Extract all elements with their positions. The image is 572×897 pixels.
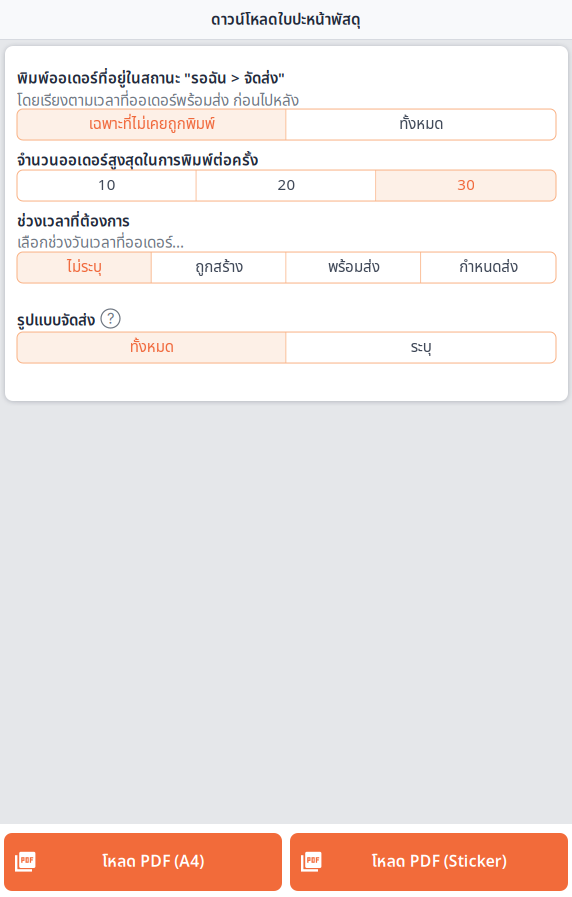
button[interactable]: Shipping format help xyxy=(101,311,120,330)
button[interactable]: โหลด PDF (Sticker) xyxy=(290,833,568,891)
staticText: จำนวนออเดอร์สูงสุดในการพิมพ์ต่อครั้ง xyxy=(17,150,258,172)
staticText: โหลด PDF (Sticker) xyxy=(372,850,507,874)
staticText: ช่วงเวลาที่ต้องการ xyxy=(17,211,130,233)
staticText: กำหนดส่ง xyxy=(459,256,518,279)
staticText: 20 xyxy=(277,174,295,197)
button[interactable]: 20 xyxy=(197,170,376,201)
staticText: ? xyxy=(107,310,114,327)
staticText: ทั้งหมด xyxy=(130,336,174,359)
staticText: พิมพ์ออเดอร์ที่อยู่ในสถานะ "รอฉัน > จัดส… xyxy=(17,68,285,90)
button[interactable]: เฉพาะที่ไม่เคยถูกพิมพ์ xyxy=(17,109,286,140)
button[interactable]: ไม่ระบุ xyxy=(17,252,152,283)
button[interactable]: กำหนดส่ง xyxy=(421,252,556,283)
button[interactable]: ระบุ xyxy=(286,332,556,363)
staticText: โดยเรียงตามเวลาที่ออเดอร์พร้อมส่ง ก่อนไป… xyxy=(17,89,299,113)
button[interactable]: 10 xyxy=(17,170,197,201)
button[interactable]: โหลด PDF (A4) xyxy=(4,833,282,891)
staticText: ระบุ xyxy=(411,336,432,359)
staticText: ทั้งหมด xyxy=(399,113,443,136)
staticText: พร้อมส่ง xyxy=(328,256,380,279)
staticText: ถูกสร้าง xyxy=(195,256,243,279)
button[interactable]: ถูกสร้าง xyxy=(152,252,287,283)
staticText: ดาวน์โหลดใบปะหน้าพัสดุ xyxy=(211,8,361,31)
staticText: โหลด PDF (A4) xyxy=(102,850,204,874)
staticText: 10 xyxy=(98,174,116,197)
button[interactable]: พร้อมส่ง xyxy=(286,252,421,283)
button[interactable]: ทั้งหมด xyxy=(286,109,556,140)
staticText: เฉพาะที่ไม่เคยถูกพิมพ์ xyxy=(89,113,215,136)
button[interactable]: 30 xyxy=(376,170,556,201)
staticText: 30 xyxy=(457,174,475,197)
button[interactable]: ทั้งหมด xyxy=(17,332,286,363)
staticText: เลือกช่วงวันเวลาที่ออเดอร์... xyxy=(17,231,184,255)
staticText: ไม่ระบุ xyxy=(67,256,102,279)
staticText: รูปแบบจัดส่ง xyxy=(17,310,95,332)
